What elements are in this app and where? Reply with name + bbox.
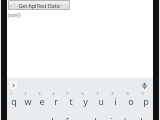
staticText: u (98, 95, 104, 107)
button[interactable]: Get ApiTest Data (8, 0, 70, 10)
button[interactable]: 8 (108, 91, 123, 111)
staticText: h (94, 115, 100, 120)
staticText: p (143, 95, 149, 107)
button[interactable]: 6 (78, 91, 93, 111)
button[interactable]: Voice input (139, 80, 149, 90)
staticText: 3 (38, 91, 41, 96)
staticText: 0 (141, 91, 144, 96)
button[interactable]: 0 (138, 91, 153, 111)
button[interactable]: l (134, 111, 149, 120)
staticText: l (140, 115, 143, 120)
staticText: e (39, 95, 45, 107)
button[interactable]: 5 (63, 91, 78, 111)
staticText: 1 (10, 91, 13, 96)
staticText: r (54, 95, 58, 107)
staticText: j (110, 115, 113, 120)
button[interactable]: 9 (123, 91, 138, 111)
button[interactable]: k (119, 111, 134, 120)
staticText: Get ApiTest Data (18, 2, 60, 9)
staticText: y (83, 95, 88, 107)
staticText: 6 (81, 91, 84, 96)
button[interactable]: f (59, 111, 74, 120)
button[interactable]: 1 (7, 91, 21, 111)
staticText: q (11, 95, 17, 107)
staticText: 5 (66, 91, 69, 96)
staticText: 7 (96, 91, 99, 96)
button[interactable]: 4 (49, 91, 63, 111)
staticText: f (65, 115, 69, 120)
staticText: k (124, 115, 129, 120)
staticText: 8 (111, 91, 114, 96)
button[interactable]: 2 (21, 91, 35, 111)
button[interactable]: d (43, 111, 59, 120)
staticText: 9 (126, 91, 129, 96)
staticText: 4 (52, 91, 55, 96)
staticText: i (114, 95, 117, 107)
staticText: d (48, 115, 54, 120)
button[interactable]: 3 (35, 91, 49, 111)
button[interactable]: h (89, 111, 104, 120)
button[interactable]: j (104, 111, 119, 120)
button[interactable]: 7 (93, 91, 108, 111)
staticText: w (24, 95, 32, 107)
staticText: 2 (24, 91, 27, 96)
staticText: t (69, 95, 73, 107)
staticText: o (128, 95, 134, 107)
button[interactable]: Expand suggestions (9, 81, 17, 89)
staticText: Json{} (8, 12, 21, 18)
